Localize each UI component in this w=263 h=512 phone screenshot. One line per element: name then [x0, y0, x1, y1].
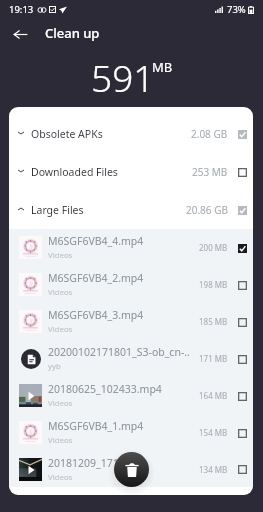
- staticText: MB: [152, 58, 173, 76]
- button[interactable]: 20200102171801_S3-ob_cn-..: [9, 340, 253, 377]
- staticText: 19:13: [9, 3, 34, 16]
- staticText: M6SGF6VB4_3.mp4: [48, 308, 144, 322]
- button[interactable]: M6SGF6VB4_4.mp4: [9, 229, 253, 266]
- staticText: Videos: [48, 472, 73, 483]
- staticText: yyb: [48, 361, 61, 372]
- button[interactable]: Select section: [234, 164, 250, 180]
- button[interactable]: Select section: [234, 202, 250, 218]
- staticText: 2.08 GB: [191, 127, 228, 141]
- staticText: Videos: [48, 398, 73, 409]
- staticText: Obsolete APKs: [31, 127, 103, 141]
- button[interactable]: Select file: [234, 240, 250, 256]
- staticText: 154 MB: [199, 427, 228, 438]
- button[interactable]: Select file: [234, 314, 250, 330]
- staticText: 591: [91, 52, 155, 98]
- staticText: 200 MB: [199, 242, 228, 253]
- staticText: Large Files: [31, 203, 84, 217]
- button[interactable]: Delete: [114, 452, 149, 487]
- button[interactable]: Back: [2, 16, 38, 52]
- staticText: M6SGF6VB4_2.mp4: [48, 271, 144, 285]
- staticText: Downloaded Files: [31, 165, 118, 179]
- staticText: 253 MB: [192, 165, 228, 179]
- staticText: Videos: [48, 324, 73, 335]
- staticText: 198 MB: [199, 279, 228, 290]
- button[interactable]: Select file: [234, 277, 250, 293]
- staticText: Videos: [48, 287, 73, 298]
- staticText: Videos: [48, 435, 73, 446]
- button[interactable]: M6SGF6VB4_2.mp4: [9, 266, 253, 303]
- button[interactable]: 20181209_171...: [9, 451, 253, 487]
- button[interactable]: Select file: [234, 351, 250, 367]
- button[interactable]: Select section: [234, 126, 250, 142]
- staticText: 20180625_102433.mp4: [48, 382, 162, 396]
- staticText: 20181209_171...: [48, 456, 128, 470]
- button[interactable]: Large Files: [9, 191, 253, 229]
- button[interactable]: Downloaded Files: [9, 153, 253, 191]
- staticText: Videos: [48, 250, 73, 261]
- button[interactable]: Obsolete APKs: [9, 115, 253, 153]
- staticText: 185 MB: [199, 316, 228, 327]
- button[interactable]: Select file: [234, 461, 250, 477]
- button[interactable]: Select file: [234, 388, 250, 404]
- staticText: 20.86 GB: [186, 203, 228, 217]
- staticText: 171 MB: [199, 353, 228, 364]
- button[interactable]: Select file: [234, 425, 250, 441]
- staticText: M6SGF6VB4_1.mp4: [48, 419, 144, 433]
- button[interactable]: M6SGF6VB4_1.mp4: [9, 414, 253, 451]
- staticText: 20200102171801_S3-ob_cn-..: [48, 345, 190, 359]
- staticText: 164 MB: [199, 390, 228, 401]
- staticText: Clean up: [45, 24, 100, 42]
- staticText: 73%: [227, 3, 246, 16]
- button[interactable]: 20180625_102433.mp4: [9, 377, 253, 414]
- staticText: 134 MB: [199, 464, 228, 475]
- staticText: M6SGF6VB4_4.mp4: [48, 234, 144, 248]
- button[interactable]: M6SGF6VB4_3.mp4: [9, 303, 253, 340]
